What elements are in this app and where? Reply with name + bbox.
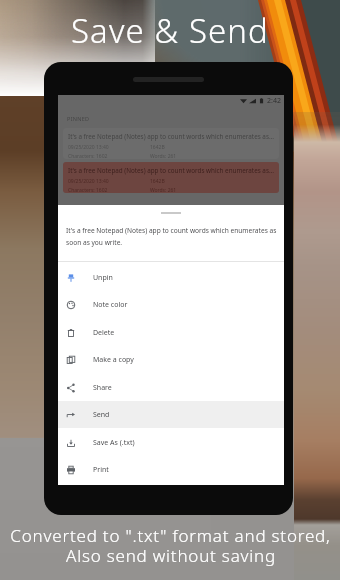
- button[interactable]: Unpin: [58, 264, 284, 291]
- staticText: Words: 261: [150, 153, 177, 159]
- staticText: Characters: 1602: [68, 153, 108, 159]
- staticText: Characters: 1602: [68, 187, 108, 193]
- staticText: Save & Send: [71, 8, 269, 53]
- staticText: Delete: [93, 328, 115, 338]
- button[interactable]: Share: [58, 374, 284, 401]
- staticText: 09/25/2020 13:40: [68, 178, 109, 185]
- staticText: soon as you write.: [66, 238, 123, 247]
- staticText: Words: 261: [150, 187, 177, 193]
- button[interactable]: Save As (.txt): [58, 429, 284, 456]
- staticText: It's a free Notepad (Notes) app to count…: [66, 226, 277, 235]
- button[interactable]: Note color: [58, 291, 284, 318]
- staticText: 1642B: [150, 144, 165, 151]
- staticText: It's a free Notepad (Notes) app to count…: [68, 166, 274, 175]
- button[interactable]: Send: [58, 401, 284, 428]
- staticText: Make a copy: [93, 355, 134, 365]
- staticText: Share: [93, 383, 112, 393]
- staticText: 2:42: [267, 96, 281, 106]
- staticText: Unpin: [93, 273, 113, 283]
- staticText: Send: [93, 410, 110, 420]
- staticText: Note color: [93, 300, 128, 310]
- staticText: Print: [93, 465, 109, 475]
- button[interactable]: Delete: [58, 319, 284, 346]
- staticText: 1642B: [150, 178, 165, 185]
- button[interactable]: Make a copy: [58, 346, 284, 373]
- button[interactable]: Print: [58, 456, 284, 483]
- staticText: Converted to ".txt" format and stored,: [10, 524, 331, 547]
- button[interactable]: It's a free Notepad (Notes) app to count…: [63, 162, 279, 193]
- staticText: Save As (.txt): [93, 438, 135, 448]
- staticText: It's a free Notepad (Notes) app to count…: [68, 132, 274, 141]
- staticText: Also send without saving: [66, 544, 276, 567]
- button[interactable]: It's a free Notepad (Notes) app to count…: [63, 128, 279, 159]
- staticText: PINNED: [67, 115, 90, 122]
- staticText: 09/25/2020 13:40: [68, 144, 109, 151]
